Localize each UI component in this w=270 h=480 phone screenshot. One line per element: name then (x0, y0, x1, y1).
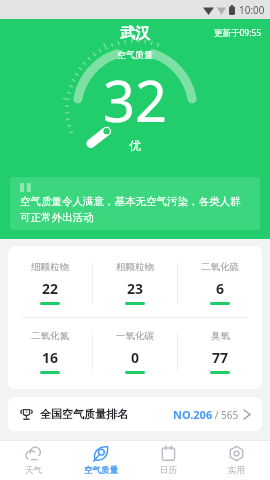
button[interactable]: 实用 (202, 440, 270, 480)
other: 空气质量 (92, 445, 109, 462)
staticText: 一氧化碳 (116, 330, 154, 342)
staticText: 0 (131, 348, 140, 367)
staticText: 空气质量 (117, 49, 153, 60)
staticText: 臭氧 (211, 330, 230, 342)
staticText: 优 (129, 138, 141, 153)
button[interactable]: 空气质量 (67, 440, 134, 480)
staticText: 23 (127, 279, 144, 298)
other: 日历 (160, 445, 177, 462)
staticText: 空气质量令人满意，基本无空气污染，各类人群可正常外出活动 (20, 195, 250, 224)
staticText: 武汉 (120, 24, 150, 43)
staticText: 粗颗粒物 (116, 261, 154, 273)
button[interactable]: 细颗粒物 (8, 256, 92, 310)
button[interactable]: 全国空气质量排名 (8, 397, 262, 431)
button[interactable]: 臭氧 (178, 325, 262, 379)
staticText: 32 (103, 62, 168, 138)
button[interactable]: 一氧化碳 (93, 325, 177, 379)
other: 天气 (25, 445, 42, 462)
staticText: 二氧化硫 (201, 261, 239, 273)
staticText: 日历 (160, 465, 177, 476)
staticText: 天气 (25, 465, 42, 476)
staticText: 全国空气质量排名 (40, 407, 128, 421)
button[interactable]: 粗颗粒物 (93, 256, 177, 310)
staticText: NO.206 / 565 (173, 407, 239, 422)
staticText: 细颗粒物 (31, 261, 69, 273)
staticText: 22 (42, 279, 59, 298)
staticText: 实用 (228, 465, 245, 476)
staticText: 空气质量 (84, 465, 118, 476)
button[interactable]: 日历 (134, 440, 202, 480)
staticText: 二氧化氮 (31, 330, 69, 342)
button[interactable]: 二氧化硫 (178, 256, 262, 310)
staticText: 16 (42, 348, 59, 367)
button[interactable]: 二氧化氮 (8, 325, 92, 379)
staticText: 10:00 (239, 3, 265, 17)
button[interactable]: 天气 (0, 440, 67, 480)
staticText: 更新于09:55 (214, 27, 262, 39)
staticText: 6 (216, 279, 225, 298)
other: 实用 (228, 445, 245, 462)
staticText: 77 (212, 348, 229, 367)
